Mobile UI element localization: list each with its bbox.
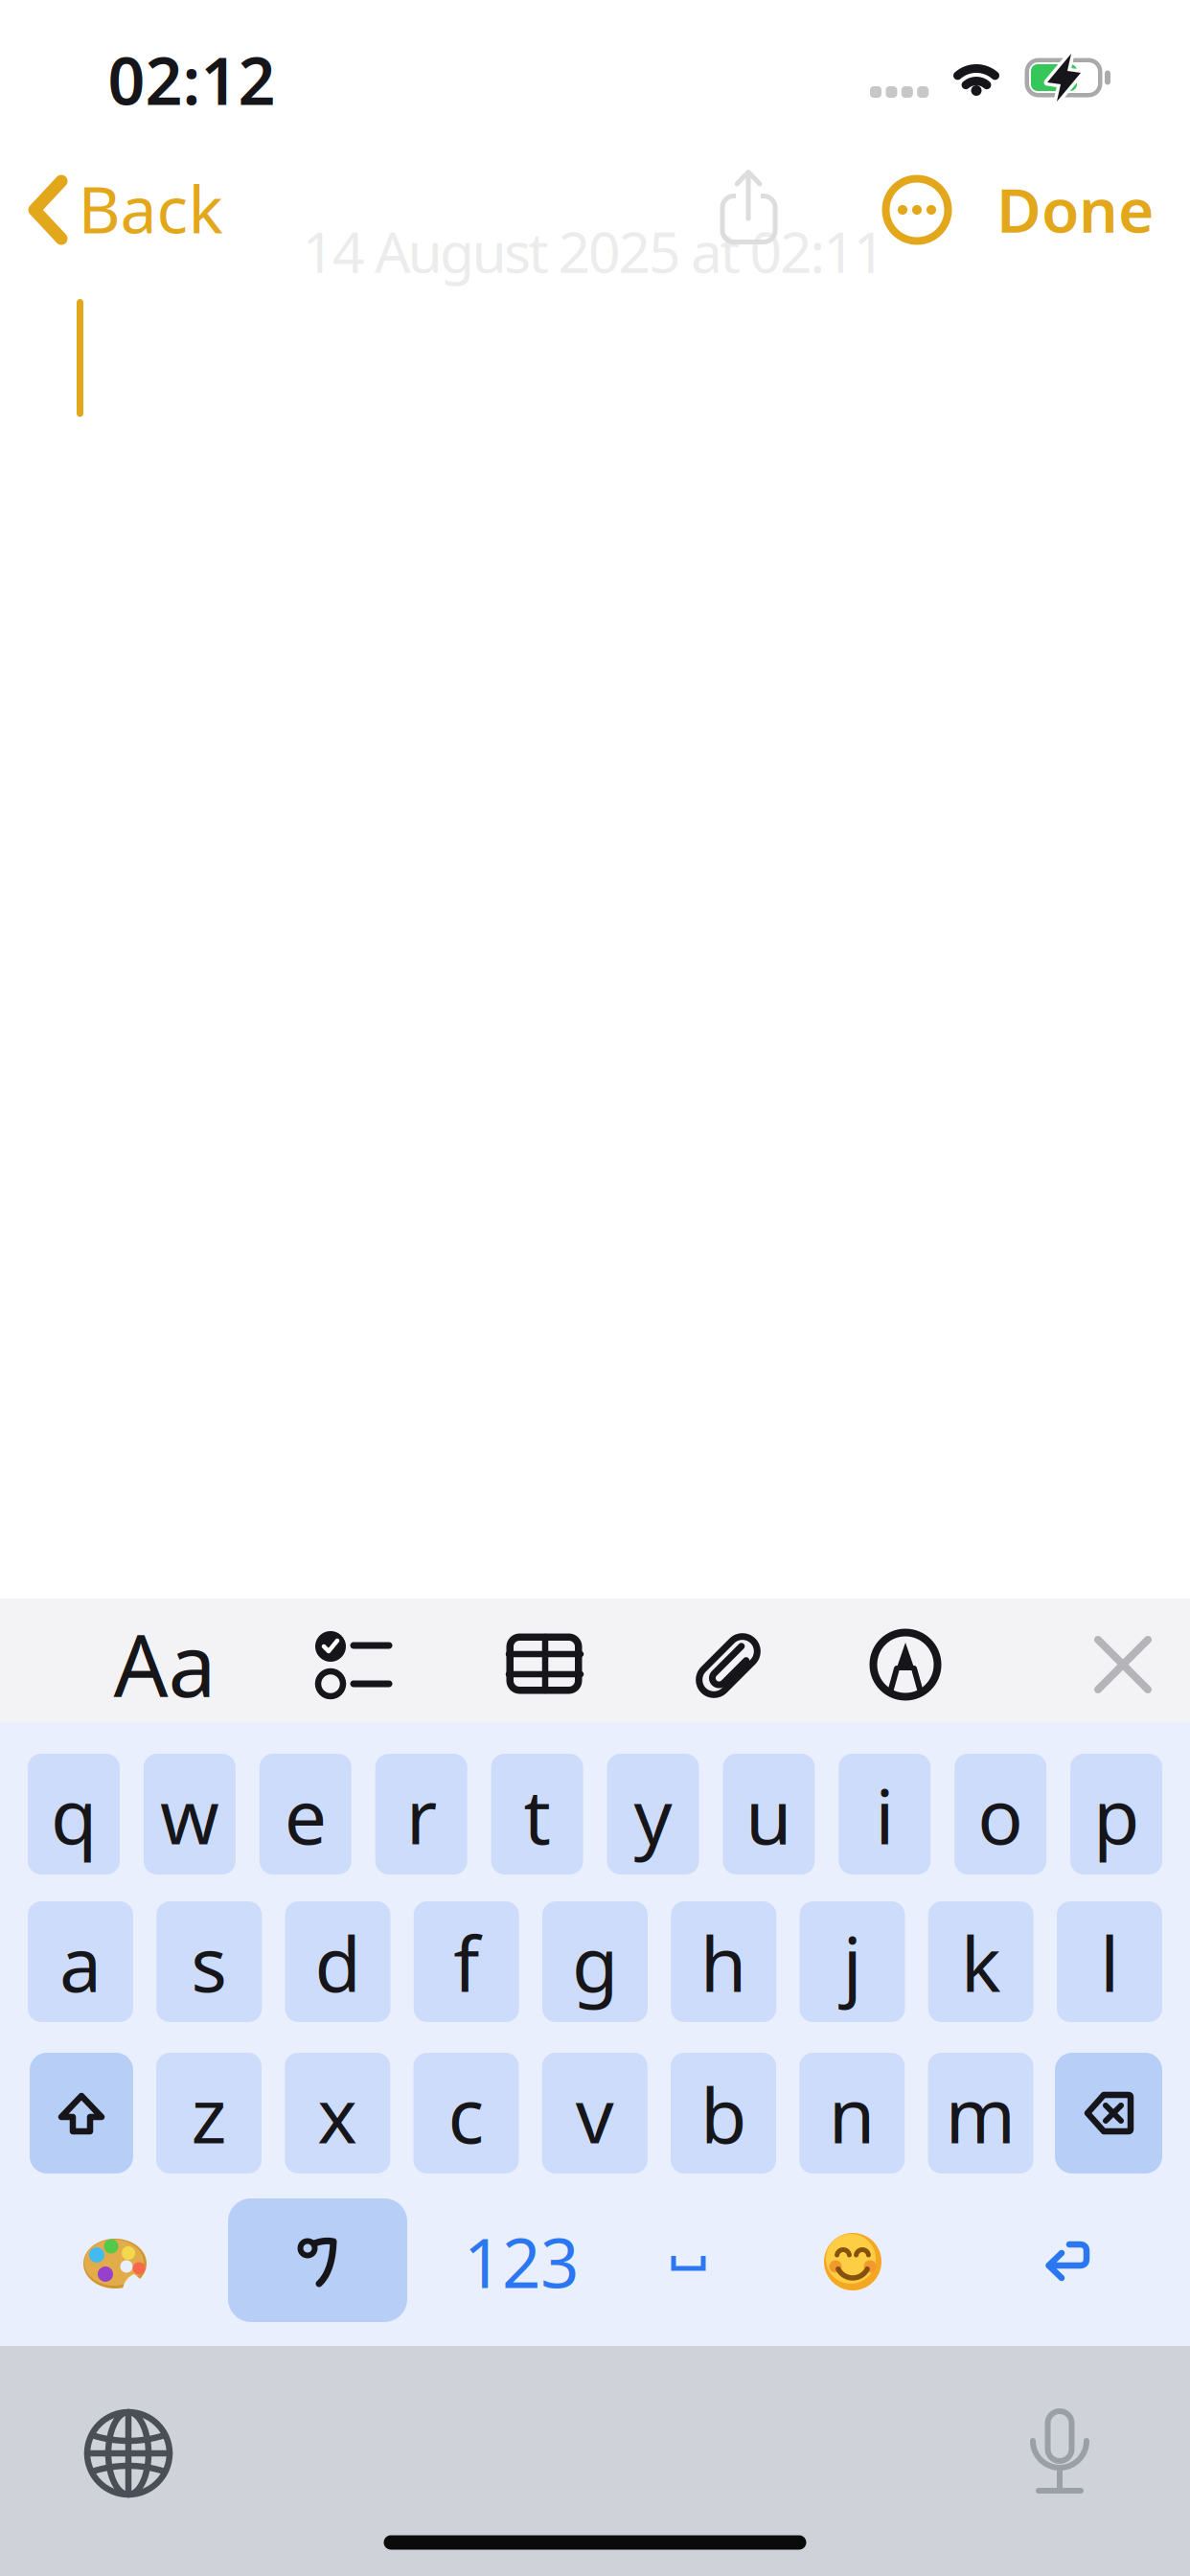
button[interactable]: z: [156, 2053, 262, 2173]
button[interactable]: Shift: [30, 2053, 133, 2173]
button[interactable]: j: [800, 1901, 905, 2022]
button[interactable]: More: [869, 162, 965, 258]
staticText: b: [700, 2064, 746, 2164]
button[interactable]: Delete: [1055, 2053, 1162, 2173]
button[interactable]: Checklist: [305, 1617, 400, 1713]
button[interactable]: o: [954, 1754, 1046, 1874]
button[interactable]: Language: [228, 2198, 407, 2322]
staticText: 02:12: [108, 36, 275, 123]
staticText: q: [51, 1765, 97, 1865]
staticText: m: [945, 2064, 1016, 2164]
button[interactable]: h: [671, 1901, 776, 2022]
staticText: Back: [78, 165, 223, 251]
staticText: x: [317, 2064, 358, 2164]
staticText: 14 August 2025 at 02:11: [302, 214, 886, 288]
button[interactable]: q: [28, 1754, 120, 1874]
staticText: w: [160, 1765, 219, 1865]
button[interactable]: u: [723, 1754, 815, 1874]
staticText: d: [315, 1913, 361, 2013]
button[interactable]: w: [144, 1754, 236, 1874]
button[interactable]: Attach: [680, 1618, 776, 1713]
button[interactable]: r: [375, 1754, 467, 1874]
button[interactable]: b: [671, 2053, 776, 2173]
staticText: Done: [996, 168, 1154, 250]
staticText: k: [961, 1913, 1001, 2013]
button[interactable]: c: [413, 2053, 519, 2173]
button[interactable]: m: [928, 2053, 1033, 2173]
button[interactable]: l: [1057, 1901, 1162, 2022]
staticText: z: [191, 2064, 227, 2164]
button[interactable]: Done: [970, 166, 1180, 252]
button[interactable]: d: [285, 1901, 390, 2022]
button[interactable]: Return: [1018, 2214, 1114, 2310]
button[interactable]: v: [542, 2053, 648, 2173]
button[interactable]: Space: [640, 2214, 736, 2310]
button[interactable]: Dictation: [1007, 2398, 1112, 2503]
button[interactable]: p: [1070, 1754, 1162, 1874]
staticText: l: [1100, 1913, 1119, 2013]
staticText: o: [977, 1765, 1023, 1865]
staticText: h: [700, 1913, 747, 2013]
staticText: p: [1093, 1765, 1139, 1865]
staticText: Aa: [114, 1607, 216, 1720]
staticText: f: [453, 1913, 479, 2013]
button[interactable]: Share: [700, 161, 796, 257]
button[interactable]: Back: [0, 164, 220, 256]
staticText: g: [572, 1913, 618, 2013]
button[interactable]: Table: [496, 1617, 592, 1713]
button[interactable]: Format: [103, 1611, 227, 1716]
button[interactable]: g: [542, 1901, 648, 2022]
staticText: u: [745, 1765, 792, 1865]
button[interactable]: x: [285, 2053, 390, 2173]
button[interactable]: n: [799, 2053, 905, 2173]
staticText: a: [59, 1913, 102, 2013]
button[interactable]: Markup: [858, 1617, 953, 1713]
button[interactable]: a: [28, 1901, 133, 2022]
button[interactable]: 123: [445, 2209, 598, 2314]
button[interactable]: k: [928, 1901, 1034, 2022]
button[interactable]: t: [491, 1754, 583, 1874]
button[interactable]: Keyboard theme: [67, 2215, 163, 2311]
staticText: e: [284, 1765, 327, 1865]
button[interactable]: y: [607, 1754, 699, 1874]
button[interactable]: i: [839, 1754, 931, 1874]
button[interactable]: Dismiss keyboard: [1075, 1617, 1171, 1713]
staticText: s: [191, 1913, 227, 2013]
staticText: c: [448, 2064, 484, 2164]
button[interactable]: e: [259, 1754, 351, 1874]
button[interactable]: s: [156, 1901, 262, 2022]
staticText: i: [875, 1765, 894, 1865]
staticText: y: [634, 1765, 672, 1865]
staticText: 123: [464, 2217, 579, 2307]
staticText: j: [843, 1913, 862, 2013]
button[interactable]: f: [414, 1901, 519, 2022]
button[interactable]: Next keyboard: [76, 2401, 181, 2506]
staticText: v: [576, 2064, 614, 2164]
staticText: t: [524, 1765, 551, 1865]
button[interactable]: Emoji: [805, 2214, 901, 2310]
staticText: r: [406, 1765, 437, 1865]
staticText: n: [829, 2064, 876, 2164]
